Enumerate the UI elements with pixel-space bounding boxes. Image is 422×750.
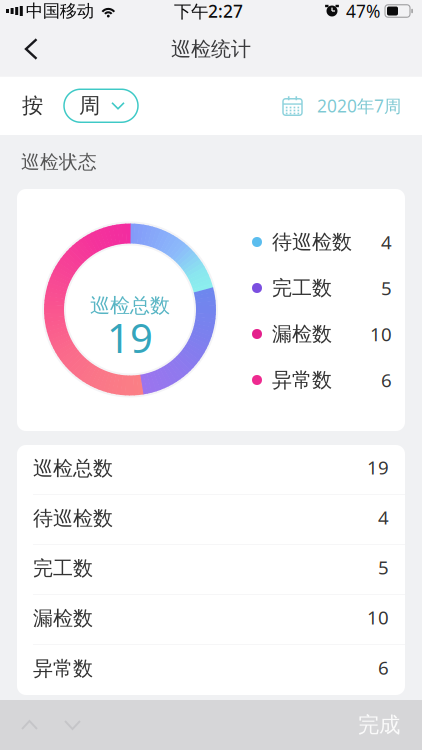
staticText: 按 [22,93,43,119]
staticText: 5 [381,276,392,300]
staticText: 10 [370,322,392,346]
staticText: 异常数 [272,368,332,392]
staticText: 漏检数 [33,606,93,631]
button[interactable]: 完成 [358,700,422,750]
staticText: 6 [381,368,392,392]
staticText: 完工数 [272,276,332,300]
button[interactable]: Back [0,22,52,76]
staticText: 巡检总数 [33,456,113,481]
staticText: 下午2:27 [174,0,243,22]
staticText: 19 [107,311,153,364]
staticText: 中国移动 [26,0,94,22]
staticText: 异常数 [33,656,93,681]
staticText: 4 [381,230,392,254]
staticText: 完工数 [33,556,93,581]
staticText: 47% [346,0,380,22]
staticText: 完成 [358,712,400,738]
staticText: 巡检状态 [21,150,97,173]
staticText: 巡检统计 [171,37,251,61]
staticText: 10 [367,605,389,630]
staticText: 漏检数 [272,322,332,346]
staticText: 5 [378,555,389,580]
staticText: 待巡检数 [272,230,352,254]
staticText: 2020年7周 [317,94,401,117]
staticText: 4 [378,505,389,530]
staticText: 巡检总数 [90,293,170,318]
button[interactable]: 2020年7周 [283,84,422,128]
staticText: 19 [367,455,389,480]
staticText: 6 [378,655,389,680]
staticText: 周 [79,93,100,119]
staticText: 待巡检数 [33,506,113,531]
button[interactable]: 周 [64,89,138,122]
